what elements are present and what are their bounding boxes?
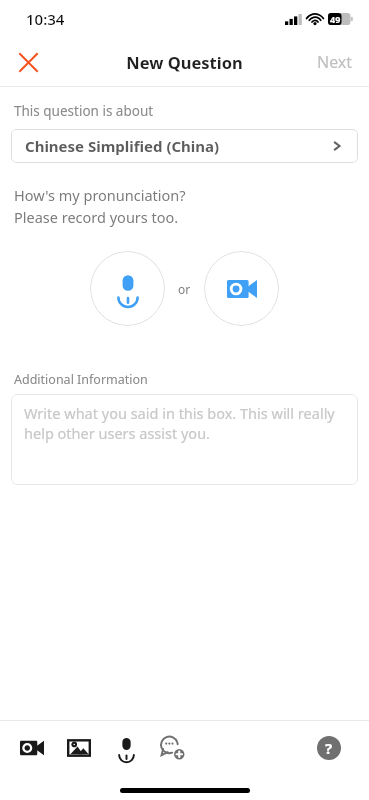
button[interactable]: Next	[301, 41, 369, 83]
staticText: Additional Information	[14, 371, 148, 388]
staticText: or	[178, 281, 191, 297]
button[interactable]: Help	[309, 728, 349, 768]
button[interactable]: Write what you said in this box. This wi…	[11, 394, 358, 485]
staticText: Next	[317, 51, 353, 73]
staticText: 10:34	[26, 9, 65, 29]
button[interactable]: Close	[8, 42, 48, 82]
button[interactable]: Photo	[59, 728, 99, 768]
staticText: How's my pronunciation?	[14, 185, 186, 205]
staticText: This question is about	[14, 102, 154, 120]
staticText: 49	[330, 13, 341, 25]
button[interactable]: Video	[12, 728, 52, 768]
staticText: Chinese Simplified (China)	[25, 136, 330, 156]
button[interactable]: Audio	[106, 728, 146, 768]
button[interactable]: Chinese Simplified (China)	[11, 129, 358, 163]
staticText: Write what you said in this box. This wi…	[24, 403, 345, 444]
staticText: ?	[325, 738, 333, 758]
button[interactable]: Record video	[204, 251, 279, 326]
staticText: New Question	[126, 51, 243, 73]
button[interactable]: Add phrase	[153, 728, 193, 768]
staticText: Please record yours too.	[14, 207, 179, 227]
button[interactable]: Record audio	[90, 251, 165, 326]
